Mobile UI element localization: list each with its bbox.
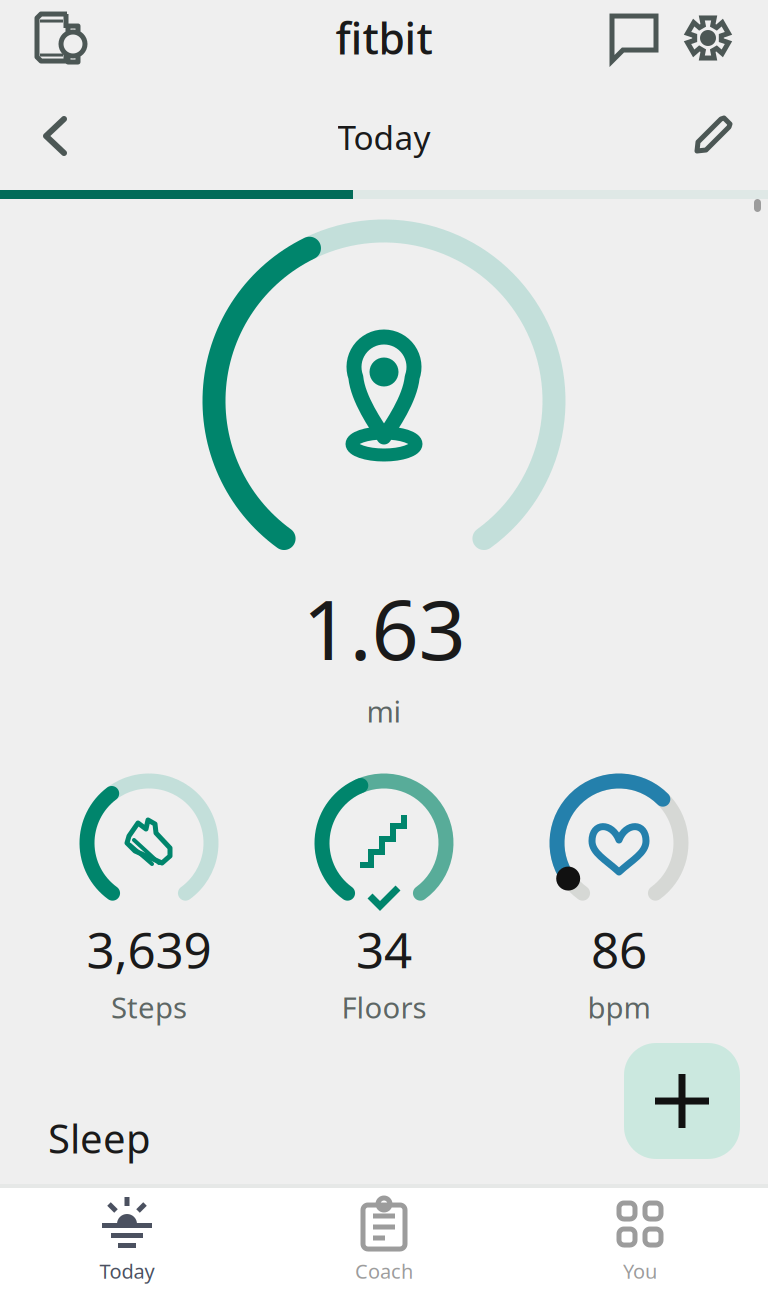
button[interactable]: Coach tab: [0, 0, 256, 111]
staticText: 86: [591, 916, 647, 982]
staticText: Coach: [355, 1258, 413, 1284]
staticText: Sleep: [48, 1111, 151, 1164]
staticText: Today: [337, 115, 430, 159]
button[interactable]: Today tab: [0, 0, 256, 111]
button[interactable]: Add: [0, 0, 768, 1299]
staticText: You: [623, 1258, 657, 1284]
button[interactable]: Edit: [0, 0, 768, 1299]
staticText: 34: [356, 916, 412, 982]
staticText: Steps: [111, 987, 187, 1026]
button[interactable]: Messages: [0, 0, 768, 1299]
button[interactable]: You tab: [0, 0, 256, 111]
staticText: mi: [366, 691, 401, 730]
staticText: fitbit: [335, 10, 432, 66]
button[interactable]: Devices: [0, 0, 768, 1299]
staticText: 3,639: [86, 916, 211, 982]
button[interactable]: Back: [0, 0, 768, 1299]
staticText: bpm: [587, 987, 650, 1026]
staticText: Today: [99, 1258, 154, 1284]
staticText: 1.63: [302, 573, 465, 683]
staticText: Floors: [341, 987, 426, 1026]
button[interactable]: Settings: [0, 0, 768, 1299]
